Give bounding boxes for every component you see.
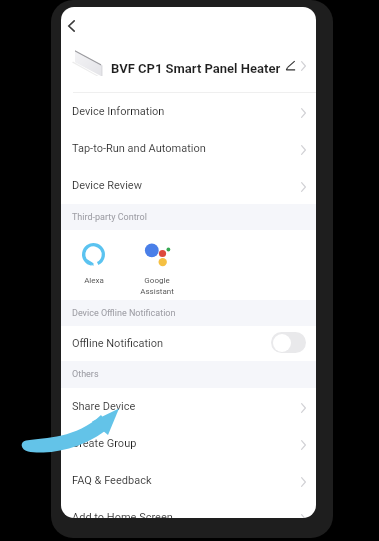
staticText: Add to Home Screen bbox=[72, 511, 173, 518]
button[interactable]: FAQ & Feedback bbox=[61, 462, 316, 499]
button[interactable]: Add to Home Screen bbox=[61, 499, 316, 518]
button[interactable]: Share Device bbox=[61, 388, 316, 425]
button[interactable]: Google Assistant bbox=[131, 235, 183, 299]
button[interactable]: Back bbox=[61, 12, 85, 40]
staticText: Share Device bbox=[72, 400, 136, 413]
button[interactable]: Create Group bbox=[61, 425, 316, 462]
staticText: Create Group bbox=[72, 437, 137, 450]
button[interactable]: Alexa bbox=[67, 235, 119, 299]
staticText: Third-party Control bbox=[72, 212, 147, 223]
staticText: BVF CP1 Smart Panel Heater bbox=[111, 61, 281, 76]
button[interactable]: Device Review bbox=[61, 167, 316, 204]
staticText: Alexa bbox=[84, 276, 104, 285]
button[interactable]: Offline Notification toggle bbox=[271, 332, 306, 353]
staticText: Others bbox=[72, 369, 99, 380]
staticText: Offline Notification bbox=[72, 337, 164, 350]
staticText: Google Assistant bbox=[140, 276, 174, 296]
staticText: Device Information bbox=[72, 105, 165, 118]
staticText: Tap-to-Run and Automation bbox=[72, 142, 206, 155]
button[interactable]: Tap-to-Run and Automation bbox=[61, 130, 316, 167]
staticText: FAQ & Feedback bbox=[72, 474, 152, 487]
button[interactable]: BVF CP1 Smart Panel Heater bbox=[61, 45, 316, 92]
button[interactable]: Device Information bbox=[61, 93, 316, 130]
button[interactable]: Offline Notification bbox=[61, 326, 316, 361]
staticText: Device Review bbox=[72, 179, 142, 192]
staticText: Device Offline Notification bbox=[72, 308, 176, 319]
